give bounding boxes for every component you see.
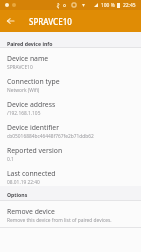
staticText: /192.168.1.105 [7, 110, 41, 117]
staticText: Connection type [7, 77, 60, 86]
staticText: 08.01.19 22:40 [7, 179, 40, 186]
staticText: 22:45 [123, 2, 136, 9]
staticText: Last connected [7, 169, 56, 178]
staticText: SPRAVCE10 [29, 16, 72, 27]
staticText: Network (Wifi) [7, 87, 40, 94]
staticText: Paired device info [7, 40, 53, 47]
staticText: SPRAVCE10 [7, 64, 33, 71]
staticText: Remove this device from list of paired d… [7, 217, 112, 224]
staticText: Device name [7, 54, 49, 63]
staticText: Device identifier [7, 123, 59, 132]
button[interactable]: Connection type [0, 71, 141, 94]
button[interactable]: Remove device [0, 201, 141, 227]
staticText: 100 % [101, 2, 115, 9]
button[interactable]: Last connected [0, 163, 141, 186]
staticText: Device address [7, 100, 56, 109]
button[interactable]: Back [0, 10, 21, 32]
staticText: Options [7, 191, 28, 198]
button[interactable]: Reported version [0, 140, 141, 163]
staticText: Reported version [7, 146, 63, 155]
button[interactable]: Device name [0, 48, 141, 71]
staticText: 0.1 [7, 156, 14, 163]
staticText: cb05016884bc46448f767fe2b71ddb62 [7, 133, 94, 140]
button[interactable]: Device identifier [0, 117, 141, 140]
button[interactable]: Device address [0, 94, 141, 117]
staticText: Remove device [7, 207, 55, 216]
